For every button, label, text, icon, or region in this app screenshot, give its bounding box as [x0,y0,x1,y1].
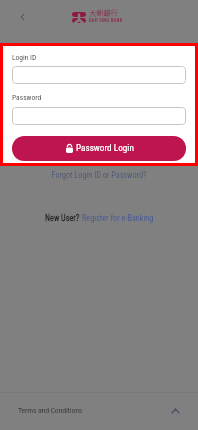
staticText: Password [12,93,42,102]
staticText: Terms and Conditions [18,406,83,415]
staticText: 大新銀行 [89,8,118,18]
button[interactable]: Password Login [12,136,186,161]
button[interactable] [12,107,186,125]
staticText: New User? [45,213,80,223]
staticText: Password Login [76,142,134,153]
button[interactable]: Terms and Conditions [0,392,198,430]
staticText: Login ID [12,53,37,62]
staticText: DAH SING BANK [89,18,123,23]
button[interactable]: Back [11,6,33,28]
button[interactable]: Forgot Login ID or Password? [0,170,198,180]
button[interactable] [12,66,186,84]
button[interactable]: Register for e-Banking [82,213,154,223]
